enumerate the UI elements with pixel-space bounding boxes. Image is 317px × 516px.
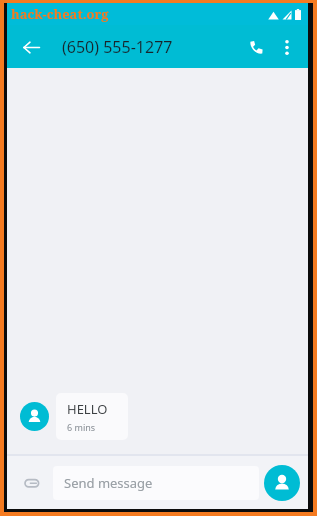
staticText: Send message — [64, 474, 153, 492]
button[interactable]: Back — [15, 31, 47, 63]
button[interactable]: Send — [264, 465, 300, 501]
button[interactable]: More options — [272, 32, 302, 62]
staticText: HELLO — [67, 400, 108, 418]
button[interactable]: Send message — [53, 466, 259, 500]
button[interactable]: Call — [240, 31, 272, 63]
button[interactable]: HELLO — [20, 393, 128, 440]
staticText: 6 mins — [67, 421, 96, 433]
button[interactable]: Attach file — [17, 468, 47, 498]
staticText: hack-cheat.org — [11, 5, 109, 23]
staticText: (650) 555-1277 — [62, 36, 173, 58]
